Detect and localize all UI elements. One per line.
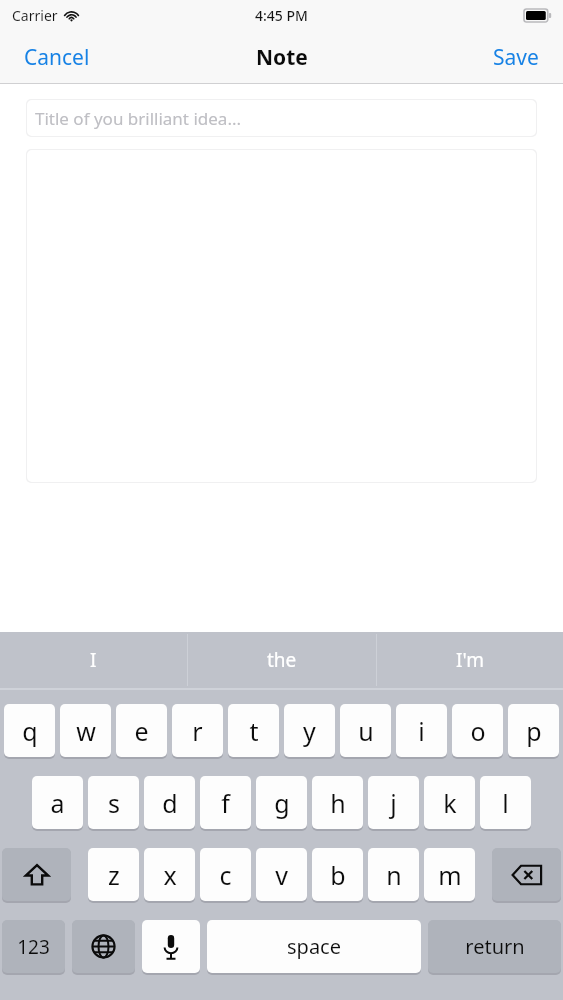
staticText: p [526,714,542,748]
staticText: a [50,786,65,820]
staticText: f [221,786,230,820]
button[interactable]: l [480,776,531,830]
staticText: m [438,858,462,892]
button[interactable]: p [508,704,559,758]
button[interactable]: q [4,704,55,758]
button[interactable]: I [0,632,187,688]
staticText: z [108,858,120,892]
staticText: y [303,714,316,748]
button[interactable]: j [368,776,419,830]
button[interactable]: t [228,704,279,758]
staticText: b [330,858,346,892]
staticText: s [108,786,120,820]
staticText: l [502,786,509,820]
staticText: d [162,786,178,820]
button[interactable]: w [60,704,111,758]
staticText: i [418,714,425,748]
button[interactable]: a [32,776,83,830]
button[interactable]: g [256,776,307,830]
staticText: e [134,714,149,748]
button[interactable]: 123 [2,920,65,974]
button[interactable]: Delete [492,848,561,902]
button[interactable]: h [312,776,363,830]
staticText: 4:45 PM [255,6,308,25]
button[interactable]: d [144,776,195,830]
staticText: t [249,714,259,748]
button[interactable]: Dictate [142,920,200,974]
button[interactable]: u [340,704,391,758]
staticText: Save [493,43,539,72]
staticText: Note [256,43,308,72]
button[interactable]: the [188,632,376,688]
staticText: space [287,933,341,960]
staticText: j [390,786,397,820]
staticText: Carrier [12,6,58,25]
staticText: n [386,858,402,892]
staticText: 123 [17,934,50,960]
staticText: g [274,786,290,820]
button[interactable]: Cancel [18,37,96,78]
staticText: u [358,714,374,748]
button[interactable]: c [200,848,251,902]
staticText: k [443,786,457,820]
button[interactable]: b [312,848,363,902]
button[interactable]: x [144,848,195,902]
staticText: v [275,858,288,892]
button[interactable]: i [396,704,447,758]
button[interactable]: r [172,704,223,758]
button[interactable]: return [428,920,561,974]
button[interactable]: space [207,920,421,974]
button[interactable]: Title of you brilliant idea... [26,99,537,137]
button[interactable]: I'm [377,632,563,688]
button[interactable]: n [368,848,419,902]
button[interactable]: y [284,704,335,758]
button[interactable]: v [256,848,307,902]
button[interactable]: z [88,848,139,902]
staticText: Cancel [24,43,90,72]
button[interactable]: s [88,776,139,830]
staticText: I'm [456,647,484,673]
button[interactable]: e [116,704,167,758]
button[interactable]: Switch keyboard [72,920,135,974]
button[interactable]: Shift [2,848,71,902]
staticText: w [76,714,96,748]
staticText: the [267,647,297,673]
button[interactable]: m [424,848,475,902]
staticText: h [330,786,346,820]
staticText: x [163,858,177,892]
staticText: return [465,933,525,960]
staticText: q [22,714,38,748]
button[interactable]: f [200,776,251,830]
staticText: r [192,714,203,748]
staticText: o [470,714,486,748]
button[interactable]: o [452,704,503,758]
button[interactable]: Save [487,37,545,78]
button[interactable]: k [424,776,475,830]
staticText: Title of you brilliant idea... [35,107,242,130]
staticText: c [219,858,232,892]
staticText: I [90,647,97,673]
